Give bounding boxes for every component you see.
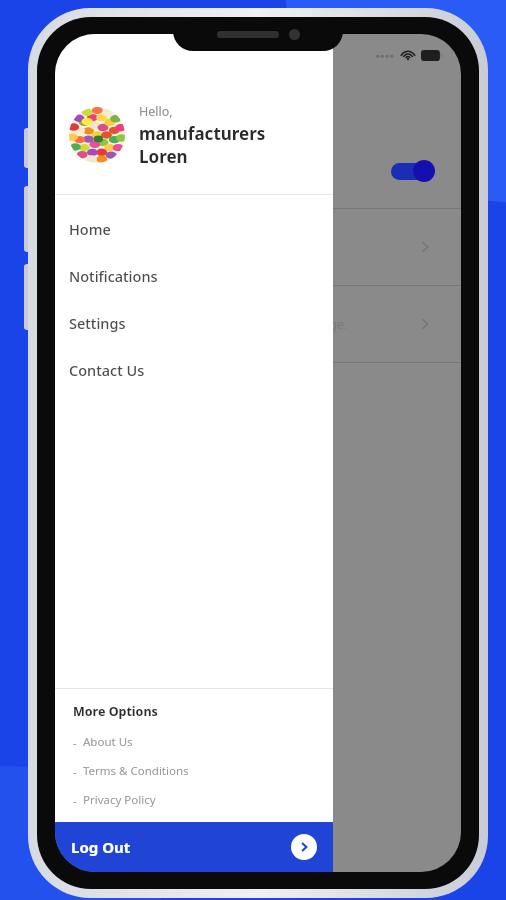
button[interactable]: Notifications xyxy=(55,252,333,299)
staticText: Notifications xyxy=(69,266,158,286)
button[interactable]: Settings xyxy=(55,299,333,346)
button[interactable]: age. xyxy=(55,286,461,362)
button[interactable]: Toggle xyxy=(391,160,435,182)
staticText: Contact Us xyxy=(69,360,145,380)
staticText: More Options xyxy=(73,703,158,720)
staticText: - xyxy=(73,793,77,808)
button[interactable]: Home xyxy=(55,205,333,252)
button[interactable]: - xyxy=(73,734,333,750)
staticText: Hello, xyxy=(139,103,173,120)
staticText: - xyxy=(73,764,77,779)
staticText: - xyxy=(73,735,77,750)
staticText: Log Out xyxy=(71,837,131,857)
button[interactable]: - xyxy=(73,763,333,779)
button[interactable] xyxy=(55,209,461,285)
staticText: age. xyxy=(323,316,348,332)
staticText: About Us xyxy=(83,734,133,750)
button[interactable]: Contact Us xyxy=(55,346,333,393)
button[interactable]: Log Out xyxy=(55,822,333,872)
staticText: Settings xyxy=(69,313,126,333)
staticText: manufacturers xyxy=(139,122,266,145)
staticText: Privacy Policy xyxy=(83,792,156,808)
button[interactable]: Hello, xyxy=(55,76,333,194)
staticText: Loren xyxy=(139,145,188,168)
staticText: Terms & Conditions xyxy=(83,763,189,779)
button[interactable]: - xyxy=(73,792,333,808)
staticText: Home xyxy=(69,219,111,239)
